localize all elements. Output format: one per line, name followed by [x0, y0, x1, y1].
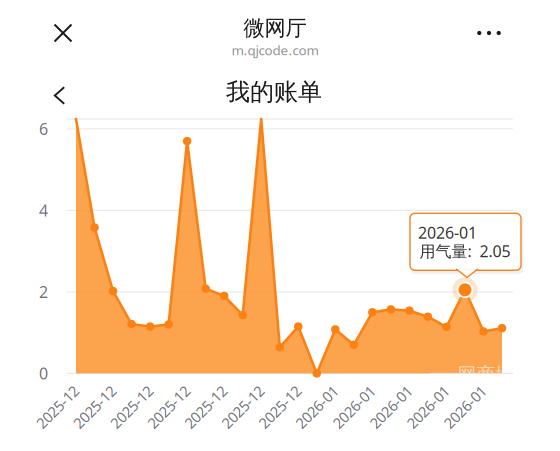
- staticText: 2026-01: [438, 397, 491, 417]
- staticText: 2026-01: [327, 397, 380, 417]
- button[interactable]: Back: [39, 75, 79, 115]
- staticText: 2025-12: [253, 397, 306, 417]
- staticText: 6: [39, 118, 48, 139]
- staticText: 2025-12: [31, 397, 84, 417]
- staticText: 4: [39, 200, 48, 221]
- staticText: 2025-12: [105, 397, 158, 417]
- staticText: 2025-12: [142, 397, 195, 417]
- button[interactable]: Close: [41, 11, 85, 55]
- staticText: 微网厅: [243, 15, 306, 41]
- staticText: 2026-01: [364, 397, 417, 417]
- staticText: 2025-12: [179, 397, 232, 417]
- staticText: 网商城: [457, 363, 514, 386]
- staticText: 2: [39, 281, 48, 302]
- staticText: 2026-01: [401, 397, 454, 417]
- staticText: 用气量: 2.05: [419, 240, 510, 262]
- staticText: 2026-01: [290, 397, 343, 417]
- staticText: 我的账单: [226, 77, 322, 107]
- staticText: 2025-12: [216, 397, 269, 417]
- button[interactable]: More: [467, 11, 511, 55]
- staticText: m.qjcode.com: [231, 41, 318, 59]
- staticText: 0: [39, 363, 48, 384]
- staticText: 2026-01: [418, 222, 477, 243]
- staticText: 2025-12: [68, 397, 121, 417]
